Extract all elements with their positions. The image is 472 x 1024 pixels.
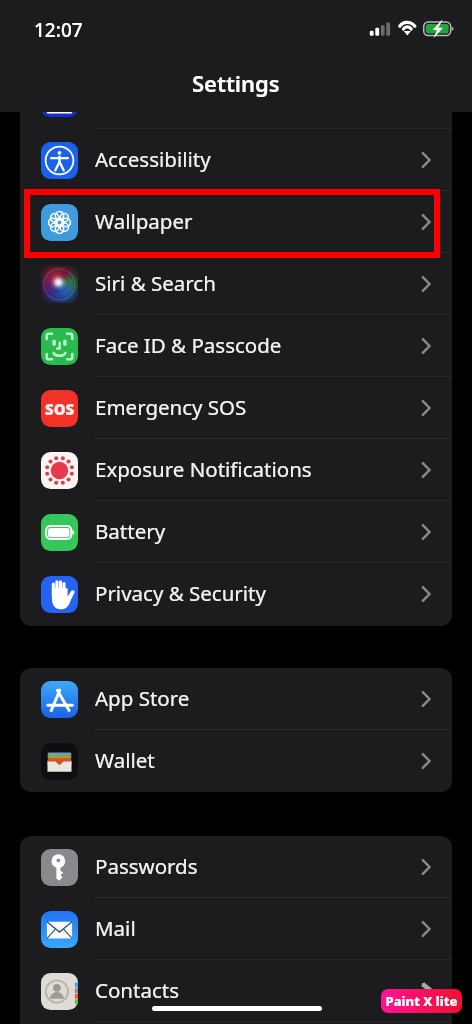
staticText: Contacts — [95, 976, 179, 1004]
staticText: App Store — [95, 684, 190, 712]
button[interactable]: Wallet icon — [20, 730, 452, 792]
other: Battery icon — [41, 514, 78, 551]
button[interactable]: Accessibility icon — [20, 129, 452, 191]
staticText: Emergency SOS — [95, 393, 247, 421]
button[interactable]: Battery icon — [20, 501, 452, 563]
other: Contacts icon — [41, 973, 78, 1010]
staticText: Siri & Search — [95, 269, 216, 297]
staticText: Battery — [95, 517, 166, 545]
other: Emergency SOS icon — [41, 390, 78, 427]
button[interactable]: Privacy & Security icon — [20, 563, 452, 625]
button[interactable]: Emergency SOS icon — [20, 377, 452, 439]
button[interactable]: Face ID & Passcode icon — [20, 315, 452, 377]
staticText: Settings — [192, 68, 280, 98]
staticText: 12:07 — [34, 17, 83, 43]
button[interactable]: Exposure Notifications icon — [20, 439, 452, 501]
button[interactable]: Mail icon — [20, 898, 452, 960]
other: App Store icon — [41, 681, 78, 718]
other: Exposure Notifications icon — [41, 452, 78, 489]
staticText: Passwords — [95, 852, 198, 880]
staticText: Paint X lite — [385, 992, 458, 1010]
other: Siri & Search icon — [41, 266, 78, 303]
staticText: Accessibility — [95, 145, 211, 173]
button[interactable]: Sounds & Haptics icon — [20, 112, 452, 129]
staticText: Face ID & Passcode — [95, 331, 282, 359]
staticText: SOS — [45, 399, 75, 419]
button[interactable]: Passwords icon — [20, 836, 452, 898]
other: Sounds & Haptics icon — [41, 112, 78, 117]
other: Wallpaper icon — [41, 204, 78, 241]
staticText: Exposure Notifications — [95, 455, 312, 483]
other: Privacy & Security icon — [41, 576, 78, 613]
button[interactable]: Wallpaper icon — [20, 191, 452, 253]
staticText: Mail — [95, 914, 136, 942]
other: Mail icon — [41, 911, 78, 948]
button[interactable]: Siri & Search icon — [20, 253, 452, 315]
button[interactable]: App Store icon — [20, 668, 452, 730]
other: Wallet icon — [41, 743, 78, 780]
staticText: Wallet — [95, 746, 155, 774]
other: Face ID & Passcode icon — [41, 328, 78, 365]
other: Cellular signal, Wi-Fi and battery charg… — [364, 16, 456, 40]
button[interactable]: Contacts icon — [20, 960, 452, 1022]
other: Passwords icon — [41, 849, 78, 886]
other: Accessibility icon — [41, 142, 78, 179]
staticText: Privacy & Security — [95, 579, 266, 607]
staticText: Wallpaper — [95, 207, 193, 235]
